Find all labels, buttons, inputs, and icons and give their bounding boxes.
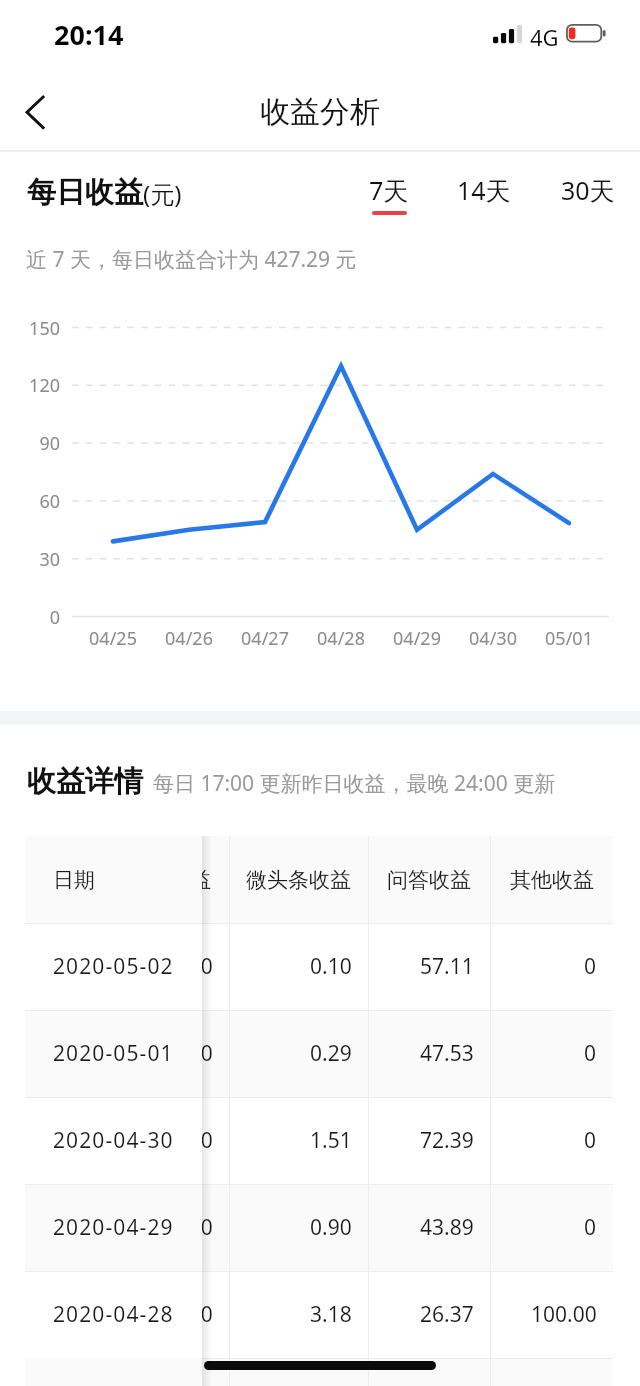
staticText: 120 [0, 373, 60, 398]
staticText: 04/29 [377, 626, 457, 651]
staticText: 90 [0, 431, 60, 456]
staticText: 0.10 [310, 952, 352, 981]
staticText: 7天 [369, 173, 409, 207]
staticText: 72.39 [420, 1126, 474, 1155]
staticText: 73.90 [159, 1126, 213, 1155]
staticText: 每日收益 [27, 174, 143, 211]
staticText: 60 [0, 489, 60, 514]
staticText: 100.00 [531, 1300, 597, 1329]
staticText: 0.90 [310, 1213, 352, 1242]
staticText: 47.53 [420, 1039, 474, 1068]
staticText: 微头条收益 [246, 867, 351, 893]
staticText: 04/27 [225, 626, 305, 651]
staticText: 44.80 [159, 1213, 213, 1242]
staticText: 收益详情 [27, 763, 143, 800]
staticText: 2020-05-02 [53, 952, 174, 981]
staticText: 0 [0, 605, 60, 630]
staticText: 04/25 [73, 626, 153, 651]
staticText: 04/30 [453, 626, 533, 651]
button[interactable]: 7天 [344, 173, 434, 223]
button[interactable]: Back [0, 83, 62, 145]
staticText: 150 [0, 316, 60, 341]
staticText: 30天 [561, 173, 615, 207]
staticText: 2020-04-29 [53, 1213, 174, 1242]
button[interactable]: 30天 [543, 173, 633, 223]
staticText: 3.18 [310, 1300, 352, 1329]
staticText: 2020-04-30 [53, 1126, 174, 1155]
staticText: 2020-04-28 [53, 1300, 174, 1329]
staticText: 1.51 [310, 1126, 352, 1155]
staticText: 近 7 天，每日收益合计为 427.29 元 [26, 245, 357, 274]
staticText: 每日 17:00 更新昨日收益，最晚 24:00 更新 [153, 769, 556, 798]
staticText: 收益分析 [260, 93, 380, 131]
staticText: 其他收益 [510, 867, 594, 893]
staticText: 43.89 [420, 1213, 474, 1242]
staticText: 47.90 [159, 1039, 213, 1068]
staticText: 日期 [53, 867, 95, 893]
staticText: 0 [584, 952, 597, 981]
staticText: 0 [584, 1039, 597, 1068]
staticText: 57.30 [159, 952, 213, 981]
staticText: 0.29 [310, 1039, 352, 1068]
staticText: 2020-05-01 [53, 1039, 174, 1068]
staticText: 05/01 [529, 626, 609, 651]
button[interactable]: 14天 [439, 173, 529, 223]
staticText: 30 [0, 547, 60, 572]
staticText: 4G [530, 22, 559, 52]
staticText: 问答收益 [387, 867, 471, 893]
staticText: 0 [584, 1213, 597, 1242]
staticText: 20:14 [54, 16, 124, 53]
staticText: 总收益 [148, 867, 211, 893]
staticText: 14天 [457, 173, 511, 207]
staticText: 57.11 [420, 952, 474, 981]
staticText: (元) [143, 177, 182, 210]
staticText: 129.60 [147, 1300, 213, 1329]
staticText: 0 [584, 1126, 597, 1155]
staticText: 04/28 [301, 626, 381, 651]
staticText: 26.37 [420, 1300, 474, 1329]
staticText: 04/26 [149, 626, 229, 651]
